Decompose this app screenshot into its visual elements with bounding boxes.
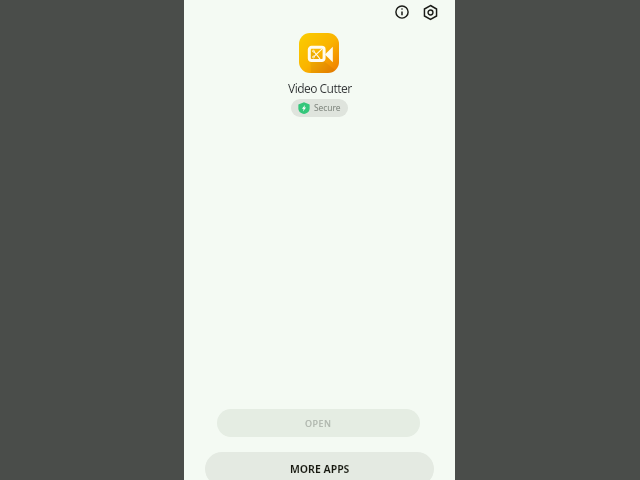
staticText: Video Cutter bbox=[288, 80, 352, 96]
staticText: MORE APPS bbox=[290, 462, 350, 476]
button[interactable]: MORE APPS bbox=[205, 452, 434, 480]
button[interactable]: Info bbox=[392, 2, 412, 22]
button[interactable]: Settings bbox=[420, 2, 440, 22]
button[interactable]: Secure bbox=[291, 99, 348, 117]
staticText: Secure bbox=[314, 102, 341, 114]
button[interactable]: OPEN bbox=[217, 409, 420, 437]
staticText: OPEN bbox=[305, 417, 332, 429]
